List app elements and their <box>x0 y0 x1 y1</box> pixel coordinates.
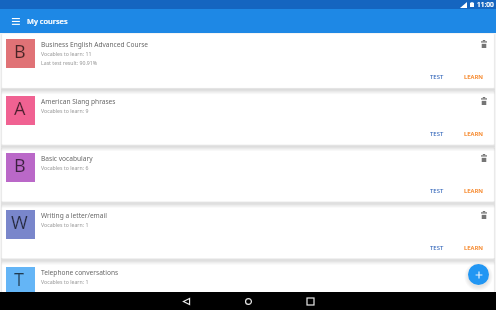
staticText: Basic vocabulary <box>41 154 93 163</box>
button[interactable]: W <box>2 205 494 259</box>
staticText: TEST <box>430 130 444 138</box>
button[interactable]: Home <box>242 295 254 307</box>
button[interactable]: LEARN <box>461 243 486 253</box>
staticText: Business English Advanced Course <box>41 40 149 49</box>
staticText: Vocables to learn: 9 <box>41 107 89 114</box>
button[interactable]: LEARN <box>461 129 486 139</box>
button[interactable]: Delete course <box>477 208 491 222</box>
staticText: Vocables to learn: 1 <box>41 278 89 285</box>
button[interactable]: Delete course <box>477 265 491 279</box>
staticText: W <box>11 210 28 235</box>
staticText: Vocables to learn: 6 <box>41 164 89 171</box>
staticText: A <box>14 96 26 121</box>
button[interactable]: Open navigation drawer <box>8 16 20 28</box>
button[interactable]: TEST <box>427 243 447 253</box>
button[interactable]: TEST <box>427 129 447 139</box>
button[interactable]: TEST <box>427 186 447 196</box>
button[interactable]: B <box>2 148 494 202</box>
staticText: LEARN <box>464 187 483 195</box>
staticText: Vocables to learn: 1 <box>41 221 89 228</box>
button[interactable]: Back <box>180 295 192 307</box>
staticText: TEST <box>430 73 444 81</box>
staticText: 11:00 <box>477 0 494 9</box>
staticText: Telephone conversations <box>41 268 119 277</box>
staticText: Vocables to learn: 11 <box>41 50 92 57</box>
staticText: TEST <box>430 244 444 252</box>
button[interactable]: TEST <box>427 72 447 82</box>
button[interactable]: Add course <box>468 264 489 285</box>
button[interactable]: A <box>2 91 494 145</box>
staticText: Last test result: 90.91% <box>41 59 98 66</box>
button[interactable]: Delete course <box>477 37 491 51</box>
button[interactable]: Delete course <box>477 151 491 165</box>
button[interactable]: LEARN <box>461 186 486 196</box>
staticText: LEARN <box>464 130 483 138</box>
staticText: Writing a letter/email <box>41 211 107 220</box>
button[interactable]: B <box>2 34 494 88</box>
staticText: My courses <box>27 16 68 26</box>
staticText: LEARN <box>464 244 483 252</box>
staticText: B <box>14 153 26 178</box>
staticText: T <box>14 267 25 292</box>
staticText: TEST <box>430 187 444 195</box>
staticText: LEARN <box>464 73 483 81</box>
staticText: B <box>14 39 26 64</box>
staticText: American Slang phrases <box>41 97 116 106</box>
button[interactable]: T <box>2 262 494 310</box>
button[interactable]: LEARN <box>461 72 486 82</box>
button[interactable]: Delete course <box>477 94 491 108</box>
button[interactable]: Recent apps <box>304 295 316 307</box>
